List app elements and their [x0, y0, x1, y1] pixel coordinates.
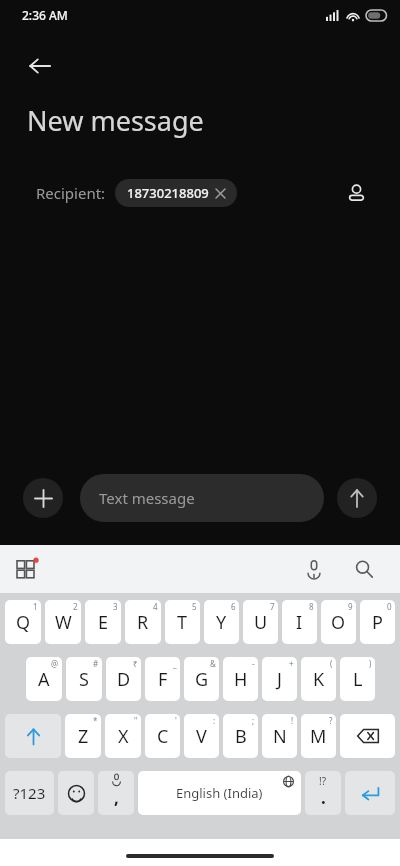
staticText: B [235, 724, 247, 749]
button[interactable]: E [85, 600, 121, 644]
staticText: D [117, 667, 131, 692]
staticText: ! [291, 715, 294, 726]
button[interactable]: English (India) [138, 771, 301, 815]
button[interactable]: P [360, 600, 395, 644]
staticText: New message [27, 102, 204, 139]
staticText: F [158, 667, 168, 692]
staticText: 7 [270, 601, 275, 612]
staticText: - [252, 658, 255, 669]
staticText: 3 [113, 601, 118, 612]
staticText: 6 [231, 601, 236, 612]
staticText: Z [78, 724, 89, 749]
button[interactable]: A [26, 657, 62, 701]
staticText: @ [51, 658, 59, 669]
staticText: E [98, 610, 109, 635]
button[interactable]: N [262, 714, 297, 758]
staticText: T [177, 610, 188, 635]
staticText: ) [369, 658, 372, 669]
button[interactable]: O [321, 600, 356, 644]
staticText: ?123 [13, 783, 46, 803]
staticText: 2 [73, 601, 78, 612]
staticText: . [321, 786, 326, 809]
staticText: O [331, 610, 346, 635]
staticText: G [195, 667, 209, 692]
staticText: 1 [33, 601, 38, 612]
staticText: L [353, 667, 363, 692]
staticText: Y [216, 610, 227, 635]
button[interactable]: X [105, 714, 141, 758]
staticText: P [372, 610, 383, 635]
staticText: S [79, 667, 89, 692]
button[interactable]: M [301, 714, 336, 758]
staticText: U [254, 610, 268, 635]
staticText: , [114, 786, 119, 809]
button[interactable]: Send [337, 478, 377, 518]
staticText: 0 [387, 601, 392, 612]
button[interactable]: T [165, 600, 200, 644]
staticText: Q [16, 610, 31, 635]
staticText: C [157, 724, 169, 749]
button[interactable]: B [223, 714, 258, 758]
button[interactable]: L [340, 657, 375, 701]
staticText: * [93, 715, 98, 726]
staticText: Text message [99, 488, 195, 508]
staticText: _ [173, 658, 177, 669]
button[interactable]: R [125, 600, 161, 644]
staticText: 18730218809 [127, 184, 209, 202]
staticText: & [210, 658, 216, 669]
staticText: N [273, 724, 287, 749]
staticText: ; [252, 715, 255, 726]
staticText: 4 [153, 601, 158, 612]
button[interactable]: Back [16, 42, 64, 90]
button[interactable]: F [145, 657, 180, 701]
button[interactable]: G [184, 657, 219, 701]
staticText: ( [330, 658, 333, 669]
staticText: I [296, 610, 303, 635]
staticText: + [289, 658, 294, 669]
staticText: ₹ [133, 658, 138, 669]
staticText: V [196, 724, 207, 749]
button[interactable]: Emoji [58, 771, 94, 815]
button[interactable]: D [106, 657, 141, 701]
staticText: Recipient: [36, 183, 106, 203]
button[interactable]: Z [65, 714, 101, 758]
button[interactable]: Period [305, 771, 341, 815]
staticText: K [313, 667, 325, 692]
button[interactable]: K [301, 657, 336, 701]
staticText: R [137, 610, 149, 635]
button[interactable]: Search [346, 551, 382, 587]
button[interactable]: Choose contact [336, 173, 376, 213]
button[interactable]: Q [5, 600, 41, 644]
staticText: 9 [348, 601, 353, 612]
button[interactable]: V [184, 714, 219, 758]
button[interactable]: U [243, 600, 278, 644]
button[interactable]: I [282, 600, 317, 644]
staticText: W [55, 610, 72, 635]
button[interactable]: Shift [5, 714, 61, 758]
button[interactable]: Text message [80, 474, 324, 522]
button[interactable]: Y [204, 600, 239, 644]
button[interactable]: S [66, 657, 102, 701]
button[interactable]: 18730218809 [115, 179, 237, 207]
staticText: ? [329, 715, 333, 726]
button[interactable]: Voice input [296, 551, 332, 587]
button[interactable]: Toolbar [8, 550, 46, 588]
button[interactable]: J [262, 657, 297, 701]
button[interactable]: ?123 [5, 771, 54, 815]
button[interactable]: Comma, voice input [98, 771, 134, 815]
staticText: J [277, 667, 282, 692]
button[interactable]: Backspace [340, 714, 395, 758]
staticText: " [134, 715, 138, 726]
button[interactable]: Enter [345, 771, 395, 815]
staticText: A [38, 667, 50, 692]
staticText: 5 [192, 601, 197, 612]
button[interactable]: C [145, 714, 180, 758]
button[interactable]: Add attachment [23, 478, 63, 518]
staticText: : [213, 715, 216, 726]
button[interactable]: H [223, 657, 258, 701]
button[interactable]: W [45, 600, 81, 644]
staticText: # [93, 658, 99, 669]
staticText: M [310, 724, 327, 749]
staticText: H [234, 667, 248, 692]
staticText: 8 [309, 601, 314, 612]
